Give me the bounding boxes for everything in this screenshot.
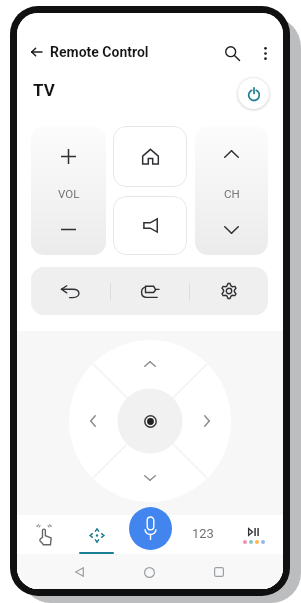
button[interactable]: Input source [111,267,189,315]
button[interactable]: Media controls [238,520,270,552]
button[interactable]: More options [252,40,278,66]
staticText: 123 [192,526,214,541]
button[interactable]: Search [219,40,245,66]
button[interactable]: Back [23,39,49,65]
button[interactable]: Channel up [195,126,268,186]
button[interactable]: Volume up [31,126,106,186]
button[interactable]: Remote Control [50,44,149,60]
button[interactable]: OK [136,407,164,435]
staticText: VOL [58,187,80,200]
button[interactable]: Recents [207,560,231,584]
button[interactable]: Up [136,350,164,378]
staticText: Remote Control [50,44,149,60]
button[interactable]: Home [113,126,187,187]
button[interactable]: Down [136,464,164,492]
button[interactable]: Back [67,560,91,584]
button[interactable]: Voice search [129,507,172,550]
button[interactable]: Touchpad [30,519,61,550]
staticText: TV [33,80,55,100]
button[interactable]: Home [137,560,161,584]
button[interactable]: Back [31,267,110,315]
button[interactable]: Numbers [180,520,226,546]
button[interactable]: Settings [190,267,268,315]
button[interactable]: Volume down [31,200,106,255]
button[interactable]: Channel down [195,200,268,255]
button[interactable]: Power [238,78,269,109]
button[interactable]: Right [193,407,221,435]
staticText: CH [224,187,240,200]
button[interactable]: Left [79,407,107,435]
button[interactable]: D-pad [81,520,112,551]
button[interactable]: Mute [113,196,187,255]
